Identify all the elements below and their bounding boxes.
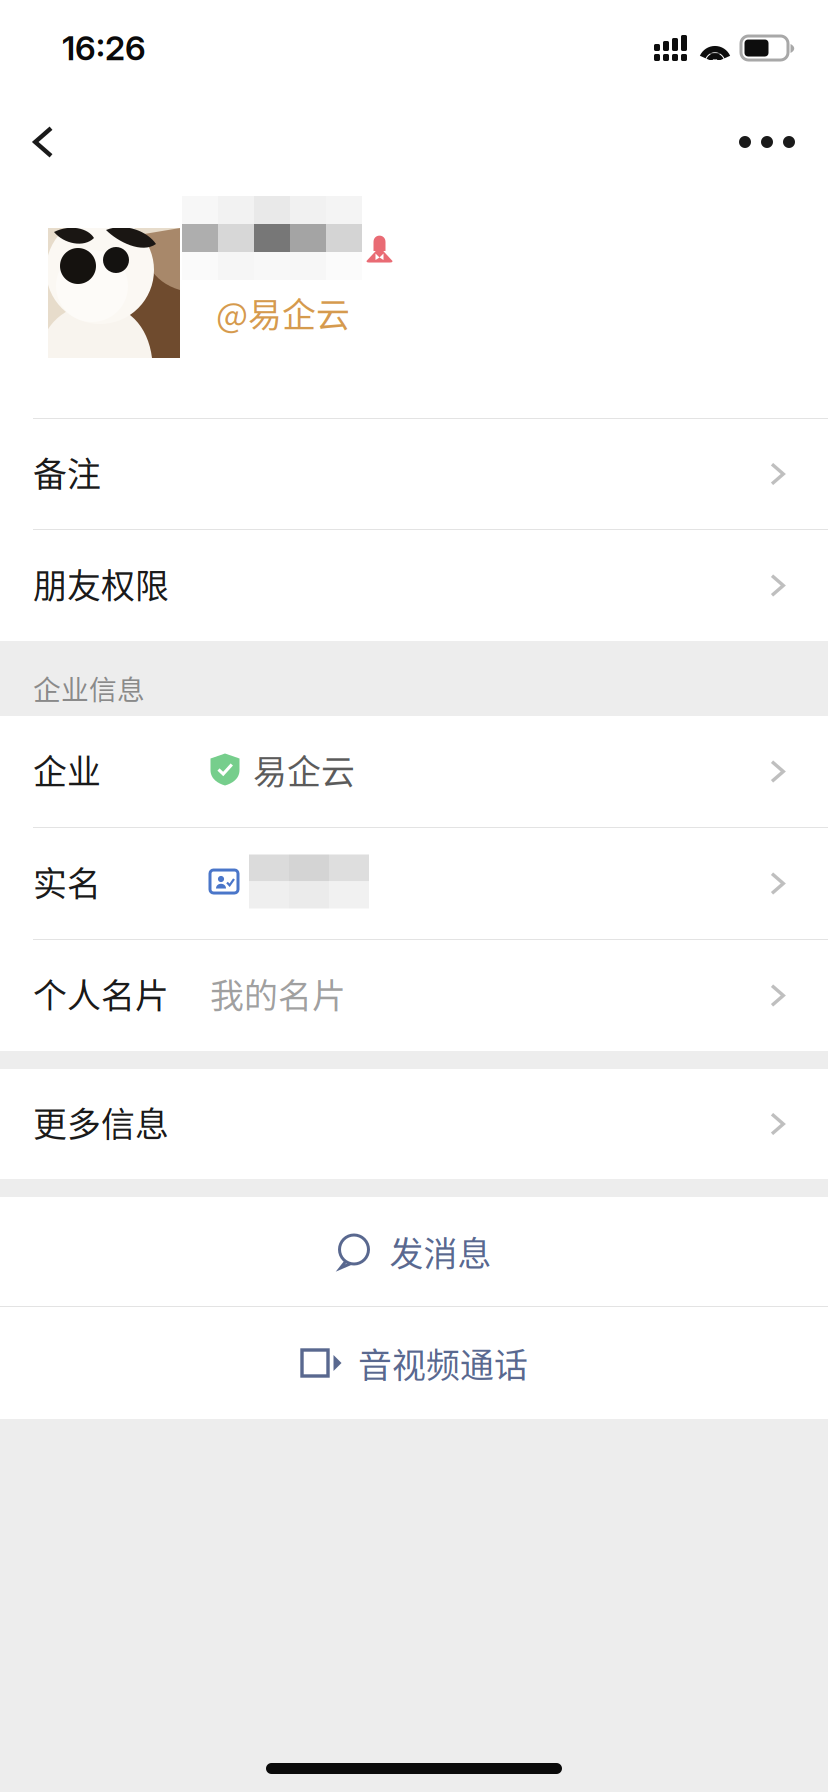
staticText: 备注 (33, 447, 101, 496)
button[interactable]: Back (0, 96, 100, 188)
staticText: 企业 (33, 745, 101, 794)
button[interactable]: 朋友权限 (0, 530, 828, 641)
staticText: 实名 (33, 857, 101, 906)
button[interactable]: 个人名片 (0, 940, 828, 1051)
staticText: 16:26 (62, 28, 146, 68)
staticText: 音视频通话 (358, 1338, 528, 1387)
button[interactable]: 备注 (0, 419, 828, 529)
staticText: 个人名片 (33, 969, 169, 1018)
button[interactable]: 音视频通话 (0, 1307, 828, 1419)
button[interactable]: 发消息 (0, 1197, 828, 1306)
button[interactable]: 更多信息 (0, 1069, 828, 1179)
staticText: 我的名片 (210, 969, 346, 1018)
staticText: @易企云 (216, 288, 350, 337)
button[interactable]: More options (708, 96, 828, 188)
staticText: 易企云 (253, 745, 355, 794)
button[interactable]: @易企云 (0, 188, 828, 418)
button[interactable]: 实名 (0, 828, 828, 939)
staticText: 发消息 (389, 1227, 491, 1276)
staticText: 朋友权限 (33, 559, 169, 608)
staticText: 更多信息 (33, 1097, 169, 1146)
staticText: 企业信息 (33, 668, 145, 708)
button[interactable]: 企业 (0, 716, 828, 827)
